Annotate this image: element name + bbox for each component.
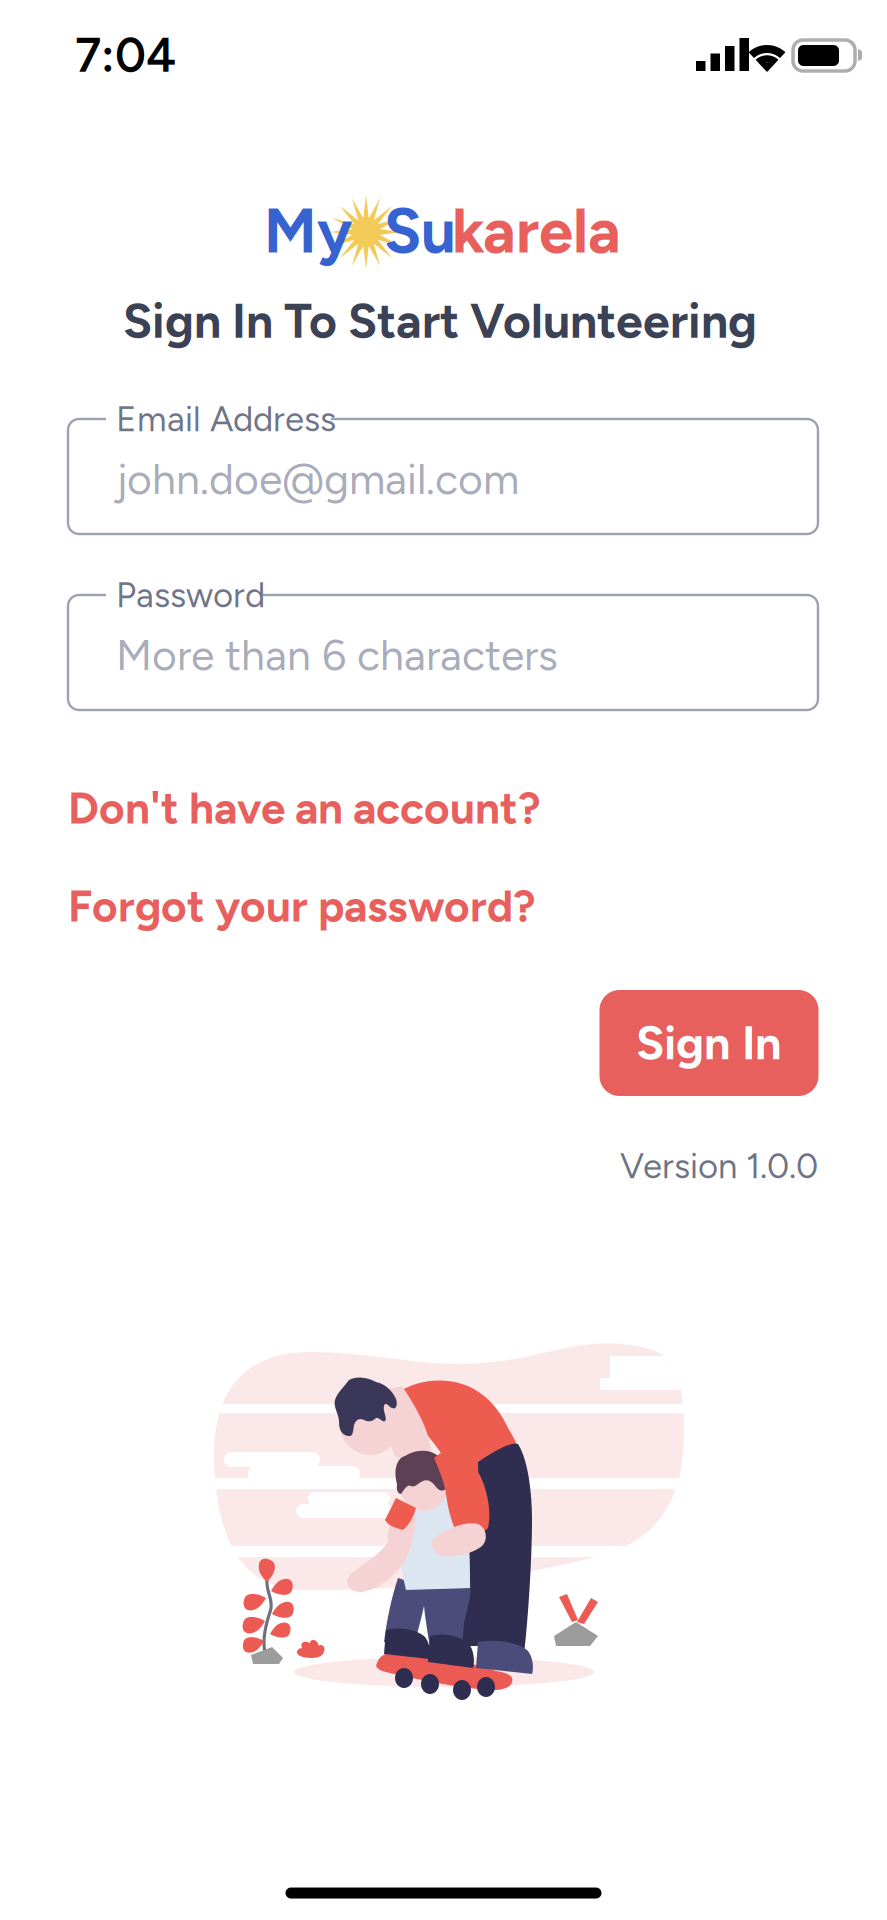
staticText: Don't have an account? [68, 782, 541, 834]
button[interactable]: Email Address [0, 0, 887, 1920]
button[interactable]: Sign In [599, 990, 818, 1096]
staticText: Sign In [636, 1015, 782, 1071]
staticText: 7:04 [75, 26, 176, 84]
button[interactable]: Forgot your password? [68, 877, 548, 935]
button[interactable]: Password [0, 0, 887, 1920]
staticText: Version 1.0.0 [620, 1145, 818, 1187]
staticText: Su [384, 194, 456, 268]
staticText: Sign In To Start Volunteering [123, 292, 757, 350]
staticText: Forgot your password? [68, 880, 536, 932]
button[interactable]: Don't have an account? [68, 779, 548, 837]
staticText: john.doe@gmail.com [116, 453, 519, 505]
staticText: Password [116, 574, 265, 616]
staticText: Email Address [116, 398, 336, 440]
staticText: My [264, 194, 352, 268]
staticText: karela [452, 194, 621, 268]
staticText: More than 6 characters [116, 629, 558, 681]
